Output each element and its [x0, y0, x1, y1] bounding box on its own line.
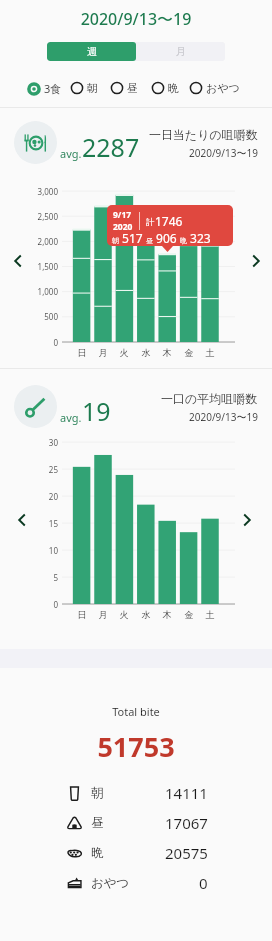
staticText: 計	[146, 217, 155, 228]
staticText: 水	[137, 609, 155, 620]
staticText: 1,500	[22, 261, 58, 272]
button[interactable]: 月	[136, 42, 225, 61]
button[interactable]: Previous week	[10, 508, 34, 532]
button[interactable]: おやつ	[189, 81, 240, 95]
staticText: おやつ	[206, 81, 240, 95]
staticText: 0	[22, 337, 58, 348]
staticText: 土	[201, 347, 219, 358]
staticText: 517	[119, 230, 143, 246]
staticText: 2,500	[22, 211, 58, 222]
staticText: 木	[158, 609, 176, 620]
staticText: 15	[22, 518, 58, 529]
staticText: 9/17	[113, 209, 132, 221]
staticText: 2020/9/13〜19	[189, 410, 258, 424]
staticText: 1746	[155, 213, 183, 229]
staticText: 昼	[91, 815, 104, 831]
staticText: 20	[22, 491, 58, 502]
staticText: 3,000	[22, 186, 58, 197]
button[interactable]: Previous week	[6, 249, 30, 273]
staticText: 0	[22, 599, 58, 610]
staticText: 朝	[112, 236, 119, 245]
staticText: 朝	[91, 785, 104, 801]
staticText: 火	[115, 347, 133, 358]
staticText: 25	[22, 464, 58, 475]
staticText: 火	[115, 609, 133, 620]
staticText: 0	[199, 873, 208, 893]
staticText: 20575	[165, 843, 208, 863]
staticText: 一日当たりの咀嚼数	[149, 127, 258, 142]
staticText: おやつ	[91, 875, 130, 891]
staticText: 土	[201, 609, 219, 620]
button[interactable]: 週	[47, 42, 136, 61]
button[interactable]: 昼	[110, 81, 138, 95]
staticText: 5	[22, 572, 58, 583]
staticText: 906	[153, 230, 177, 246]
staticText: 木	[158, 347, 176, 358]
staticText: 3食	[44, 81, 62, 96]
staticText: 2,000	[22, 236, 58, 247]
staticText: 昼	[146, 236, 153, 245]
staticText: 2020	[113, 221, 133, 233]
button[interactable]: 3食	[27, 81, 62, 96]
staticText: 14111	[165, 783, 208, 803]
staticText: 500	[22, 311, 58, 322]
staticText: 月	[176, 45, 186, 58]
staticText: 2020/9/13〜19	[0, 8, 272, 30]
staticText: 月	[94, 347, 112, 358]
staticText: 51753	[0, 728, 272, 765]
staticText: 日	[73, 609, 91, 620]
staticText: 晩	[168, 81, 179, 95]
staticText: 水	[137, 347, 155, 358]
staticText: 金	[180, 609, 198, 620]
staticText: avg.	[60, 410, 82, 425]
staticText: 月	[94, 609, 112, 620]
staticText: 朝	[87, 81, 98, 95]
staticText: 日	[73, 347, 91, 358]
staticText: 金	[180, 347, 198, 358]
staticText: 昼	[127, 81, 138, 95]
button[interactable]: 朝	[70, 81, 98, 95]
staticText: 晩	[91, 845, 104, 861]
staticText: 17067	[165, 813, 208, 833]
staticText: 1,000	[22, 286, 58, 297]
staticText: 323	[187, 230, 211, 246]
staticText: avg.	[60, 146, 82, 161]
button[interactable]: Next week	[235, 508, 259, 532]
staticText: 2020/9/13〜19	[189, 146, 258, 160]
staticText: 一口の平均咀嚼数	[161, 391, 258, 406]
staticText: 週	[87, 45, 97, 58]
staticText: 晩	[180, 236, 187, 245]
staticText: 10	[22, 545, 58, 556]
staticText: Total bite	[0, 704, 272, 719]
staticText: 19	[82, 394, 111, 428]
staticText: 2287	[82, 130, 140, 164]
button[interactable]: Next week	[244, 249, 268, 273]
staticText: 30	[22, 437, 58, 448]
button[interactable]: 晩	[151, 81, 179, 95]
